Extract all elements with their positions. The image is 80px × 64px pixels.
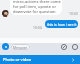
staticText: this is how i see it bbox=[47, 22, 77, 27]
button[interactable]: Close bbox=[2, 43, 9, 50]
button[interactable]: this is how i see it bbox=[45, 20, 78, 28]
staticText: micro-actions there come bbox=[13, 0, 61, 4]
button[interactable]: More bbox=[71, 58, 75, 62]
staticText: 10:04 bbox=[33, 25, 42, 30]
staticText: for poll item, upvote or bbox=[13, 4, 57, 9]
button[interactable]: micro-actions there come bbox=[10, 0, 62, 15]
staticText: downvote for question. bbox=[13, 9, 57, 14]
staticText: 10:03 bbox=[69, 11, 78, 16]
button[interactable]: Message bbox=[11, 44, 30, 50]
staticText: Photo or video bbox=[3, 57, 31, 62]
button[interactable]: GIF bbox=[61, 44, 67, 50]
button[interactable]: Avatar bbox=[2, 10, 9, 17]
button[interactable]: Stickers bbox=[72, 44, 78, 50]
staticText: Message bbox=[13, 45, 28, 50]
